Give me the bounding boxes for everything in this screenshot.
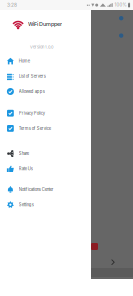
button[interactable]: Rate Us — [0, 161, 91, 176]
staticText: Settings — [19, 202, 34, 207]
staticText: 100% — [114, 2, 126, 8]
button[interactable]: Share — [0, 146, 91, 161]
staticText: List of Servers — [19, 74, 46, 79]
staticText: Terms of Service — [19, 126, 51, 131]
staticText: Notifications Center — [19, 187, 54, 192]
button[interactable]: Settings — [0, 197, 91, 212]
staticText: Version 1.0.0 — [30, 45, 54, 49]
button[interactable]: Allowed apps — [0, 84, 91, 99]
staticText: 3:28 — [7, 2, 17, 8]
button[interactable]: Privacy Policy — [0, 106, 91, 121]
staticText: Privacy Policy — [19, 111, 45, 116]
staticText: WiFi Dumpper — [28, 21, 62, 27]
button[interactable]: Notifications Center — [0, 182, 91, 197]
staticText: Home — [19, 59, 30, 64]
button[interactable]: List of Servers — [0, 69, 91, 84]
button[interactable]: Terms of Service — [0, 121, 91, 136]
staticText: Allowed apps — [19, 89, 45, 94]
staticText: Rate Us — [19, 166, 33, 171]
button[interactable]: Home — [0, 53, 91, 69]
staticText: Share — [19, 151, 29, 156]
